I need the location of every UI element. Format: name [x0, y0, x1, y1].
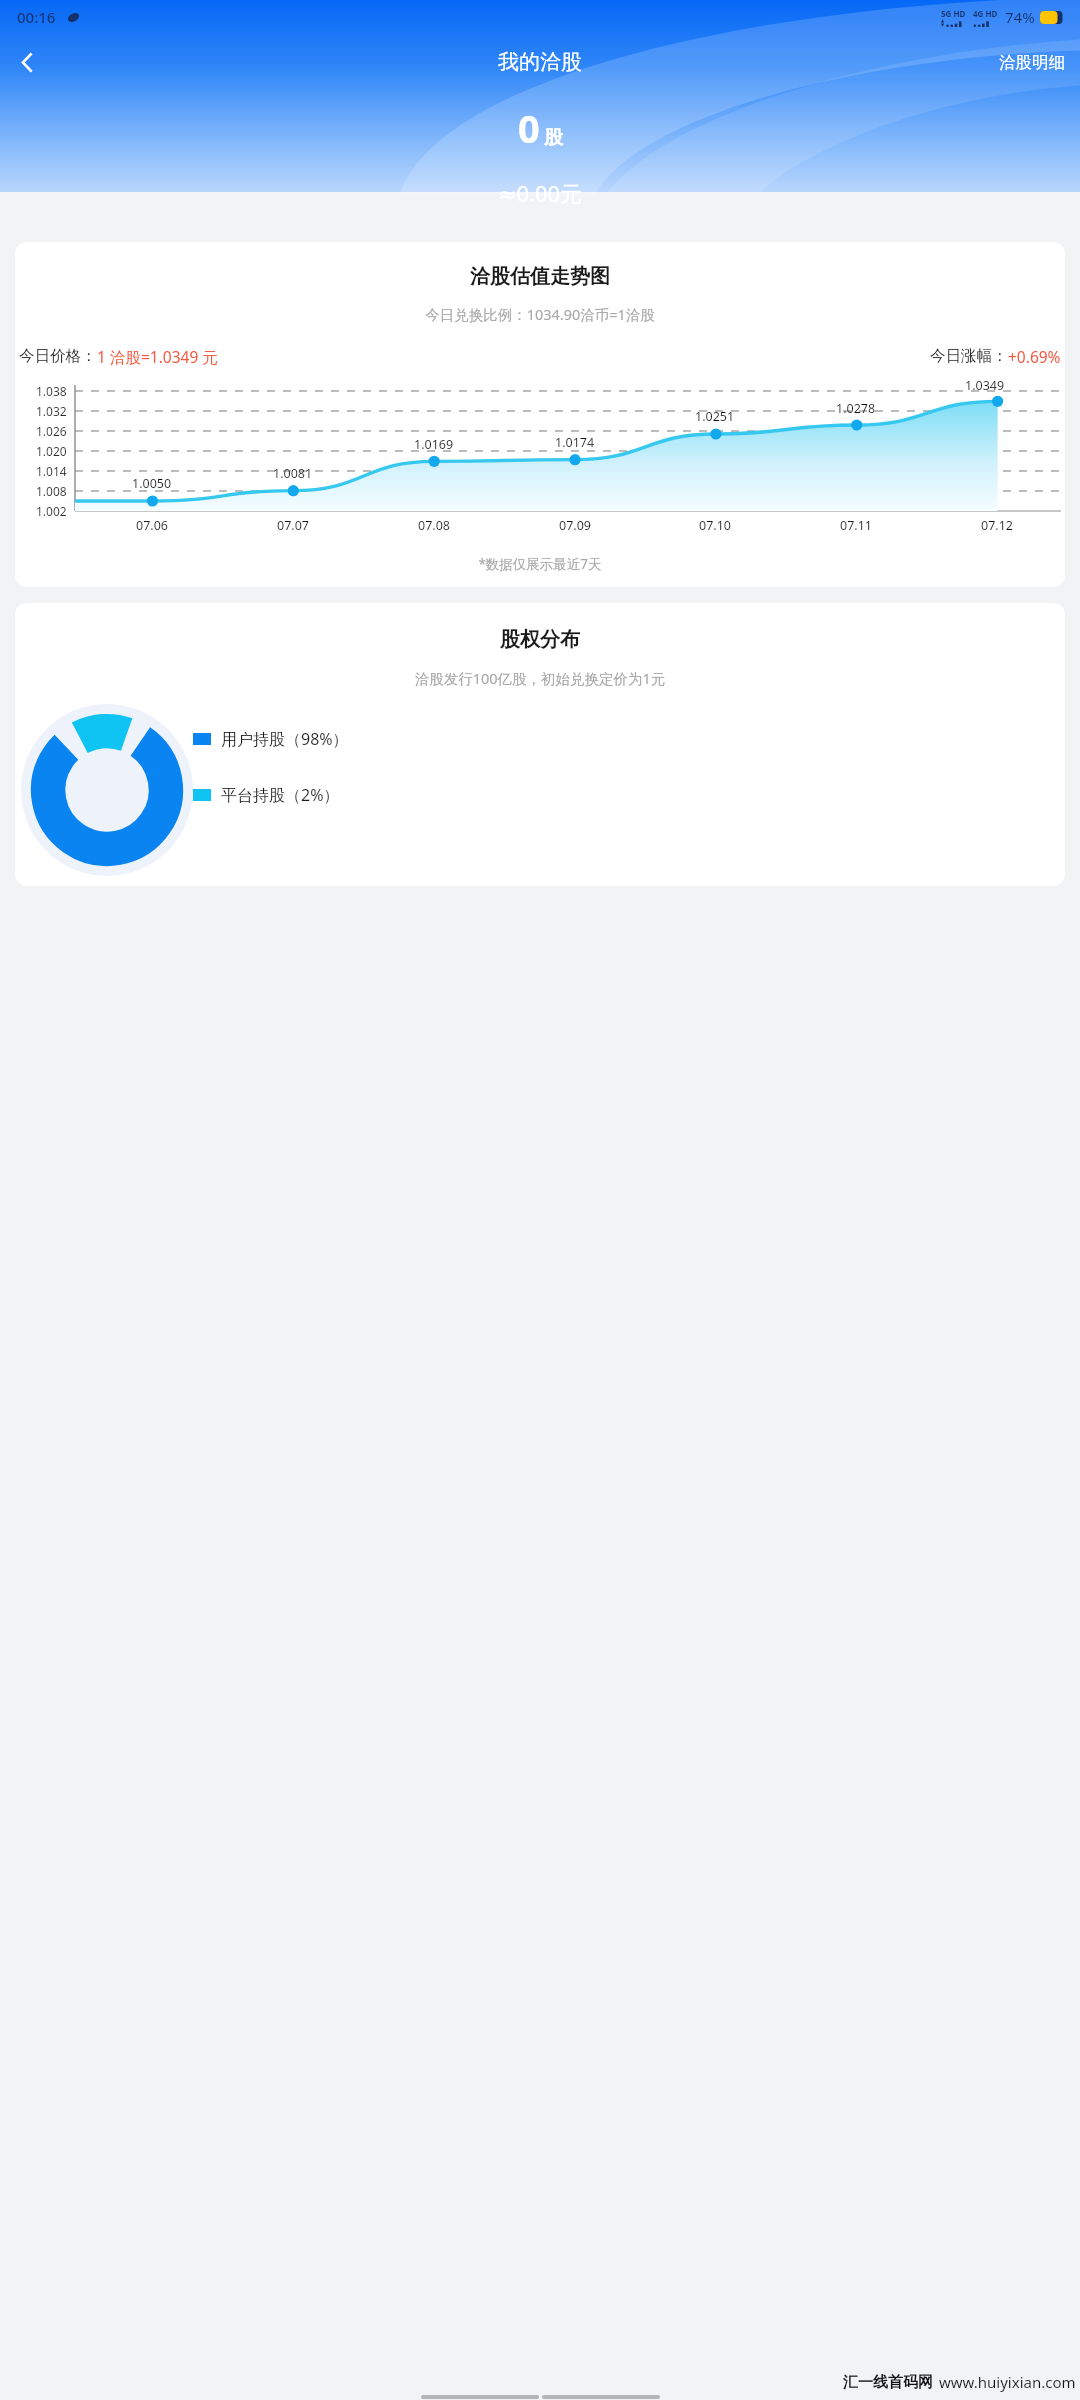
- button[interactable]: 洽股明细: [984, 40, 1080, 85]
- staticText: 0: [518, 102, 540, 154]
- button[interactable]: 用户持股（98%）: [193, 726, 349, 752]
- staticText: 今日涨幅：: [930, 346, 1008, 366]
- staticText: 1.002: [36, 503, 67, 519]
- button[interactable]: 平台持股（2%）: [193, 782, 340, 808]
- staticText: 1.038: [36, 383, 67, 399]
- staticText: 07.07: [277, 517, 309, 534]
- staticText: 洽股估值走势图: [15, 264, 1065, 289]
- staticText: 洽股发行100亿股，初始兑换定价为1元: [15, 668, 1065, 688]
- staticText: 1.0278: [836, 400, 876, 417]
- staticText: 1.0081: [273, 465, 313, 482]
- staticText: 汇一线首码网: [843, 2373, 933, 2392]
- staticText: 1.0050: [132, 475, 172, 492]
- staticText: 1.014: [36, 463, 67, 479]
- staticText: 5G HD: [941, 8, 966, 19]
- staticText: 07.11: [840, 517, 872, 534]
- staticText: 1.0174: [555, 434, 595, 451]
- staticText: 00:16: [17, 7, 56, 27]
- staticText: www.huiyixian.com: [939, 2372, 1076, 2392]
- button[interactable]: 股权分布: [15, 603, 1065, 886]
- staticText: 我的洽股: [498, 49, 582, 75]
- staticText: 07.09: [559, 517, 591, 534]
- staticText: ≈0.00元: [498, 178, 583, 208]
- staticText: *数据仅展示最近7天: [15, 555, 1065, 573]
- staticText: 1.0169: [414, 436, 454, 453]
- staticText: 07.12: [981, 517, 1013, 534]
- staticText: 1.0251: [695, 408, 735, 425]
- staticText: 洽股明细: [999, 52, 1065, 73]
- staticText: 74%: [1005, 7, 1035, 27]
- staticText: 1.0349: [965, 377, 1005, 394]
- staticText: 平台持股（2%）: [221, 784, 340, 806]
- staticText: 股: [544, 126, 563, 150]
- staticText: 1.008: [36, 483, 67, 499]
- staticText: 1.032: [36, 403, 67, 419]
- staticText: 用户持股（98%）: [221, 728, 349, 750]
- staticText: 今日价格：: [19, 346, 97, 366]
- staticText: 07.06: [136, 517, 168, 534]
- staticText: 1.020: [36, 443, 67, 459]
- staticText: 4G HD: [973, 8, 998, 19]
- staticText: 07.10: [699, 517, 731, 534]
- staticText: +0.69%: [1008, 346, 1061, 367]
- staticText: 1 洽股=1.0349 元: [97, 346, 218, 367]
- staticText: 今日兑换比例：1034.90洽币=1洽股: [15, 304, 1065, 324]
- staticText: 股权分布: [15, 627, 1065, 652]
- staticText: 07.08: [418, 517, 450, 534]
- button[interactable]: 洽股估值走势图: [15, 242, 1065, 587]
- staticText: 1.026: [36, 423, 67, 439]
- button[interactable]: 返回: [4, 39, 50, 85]
